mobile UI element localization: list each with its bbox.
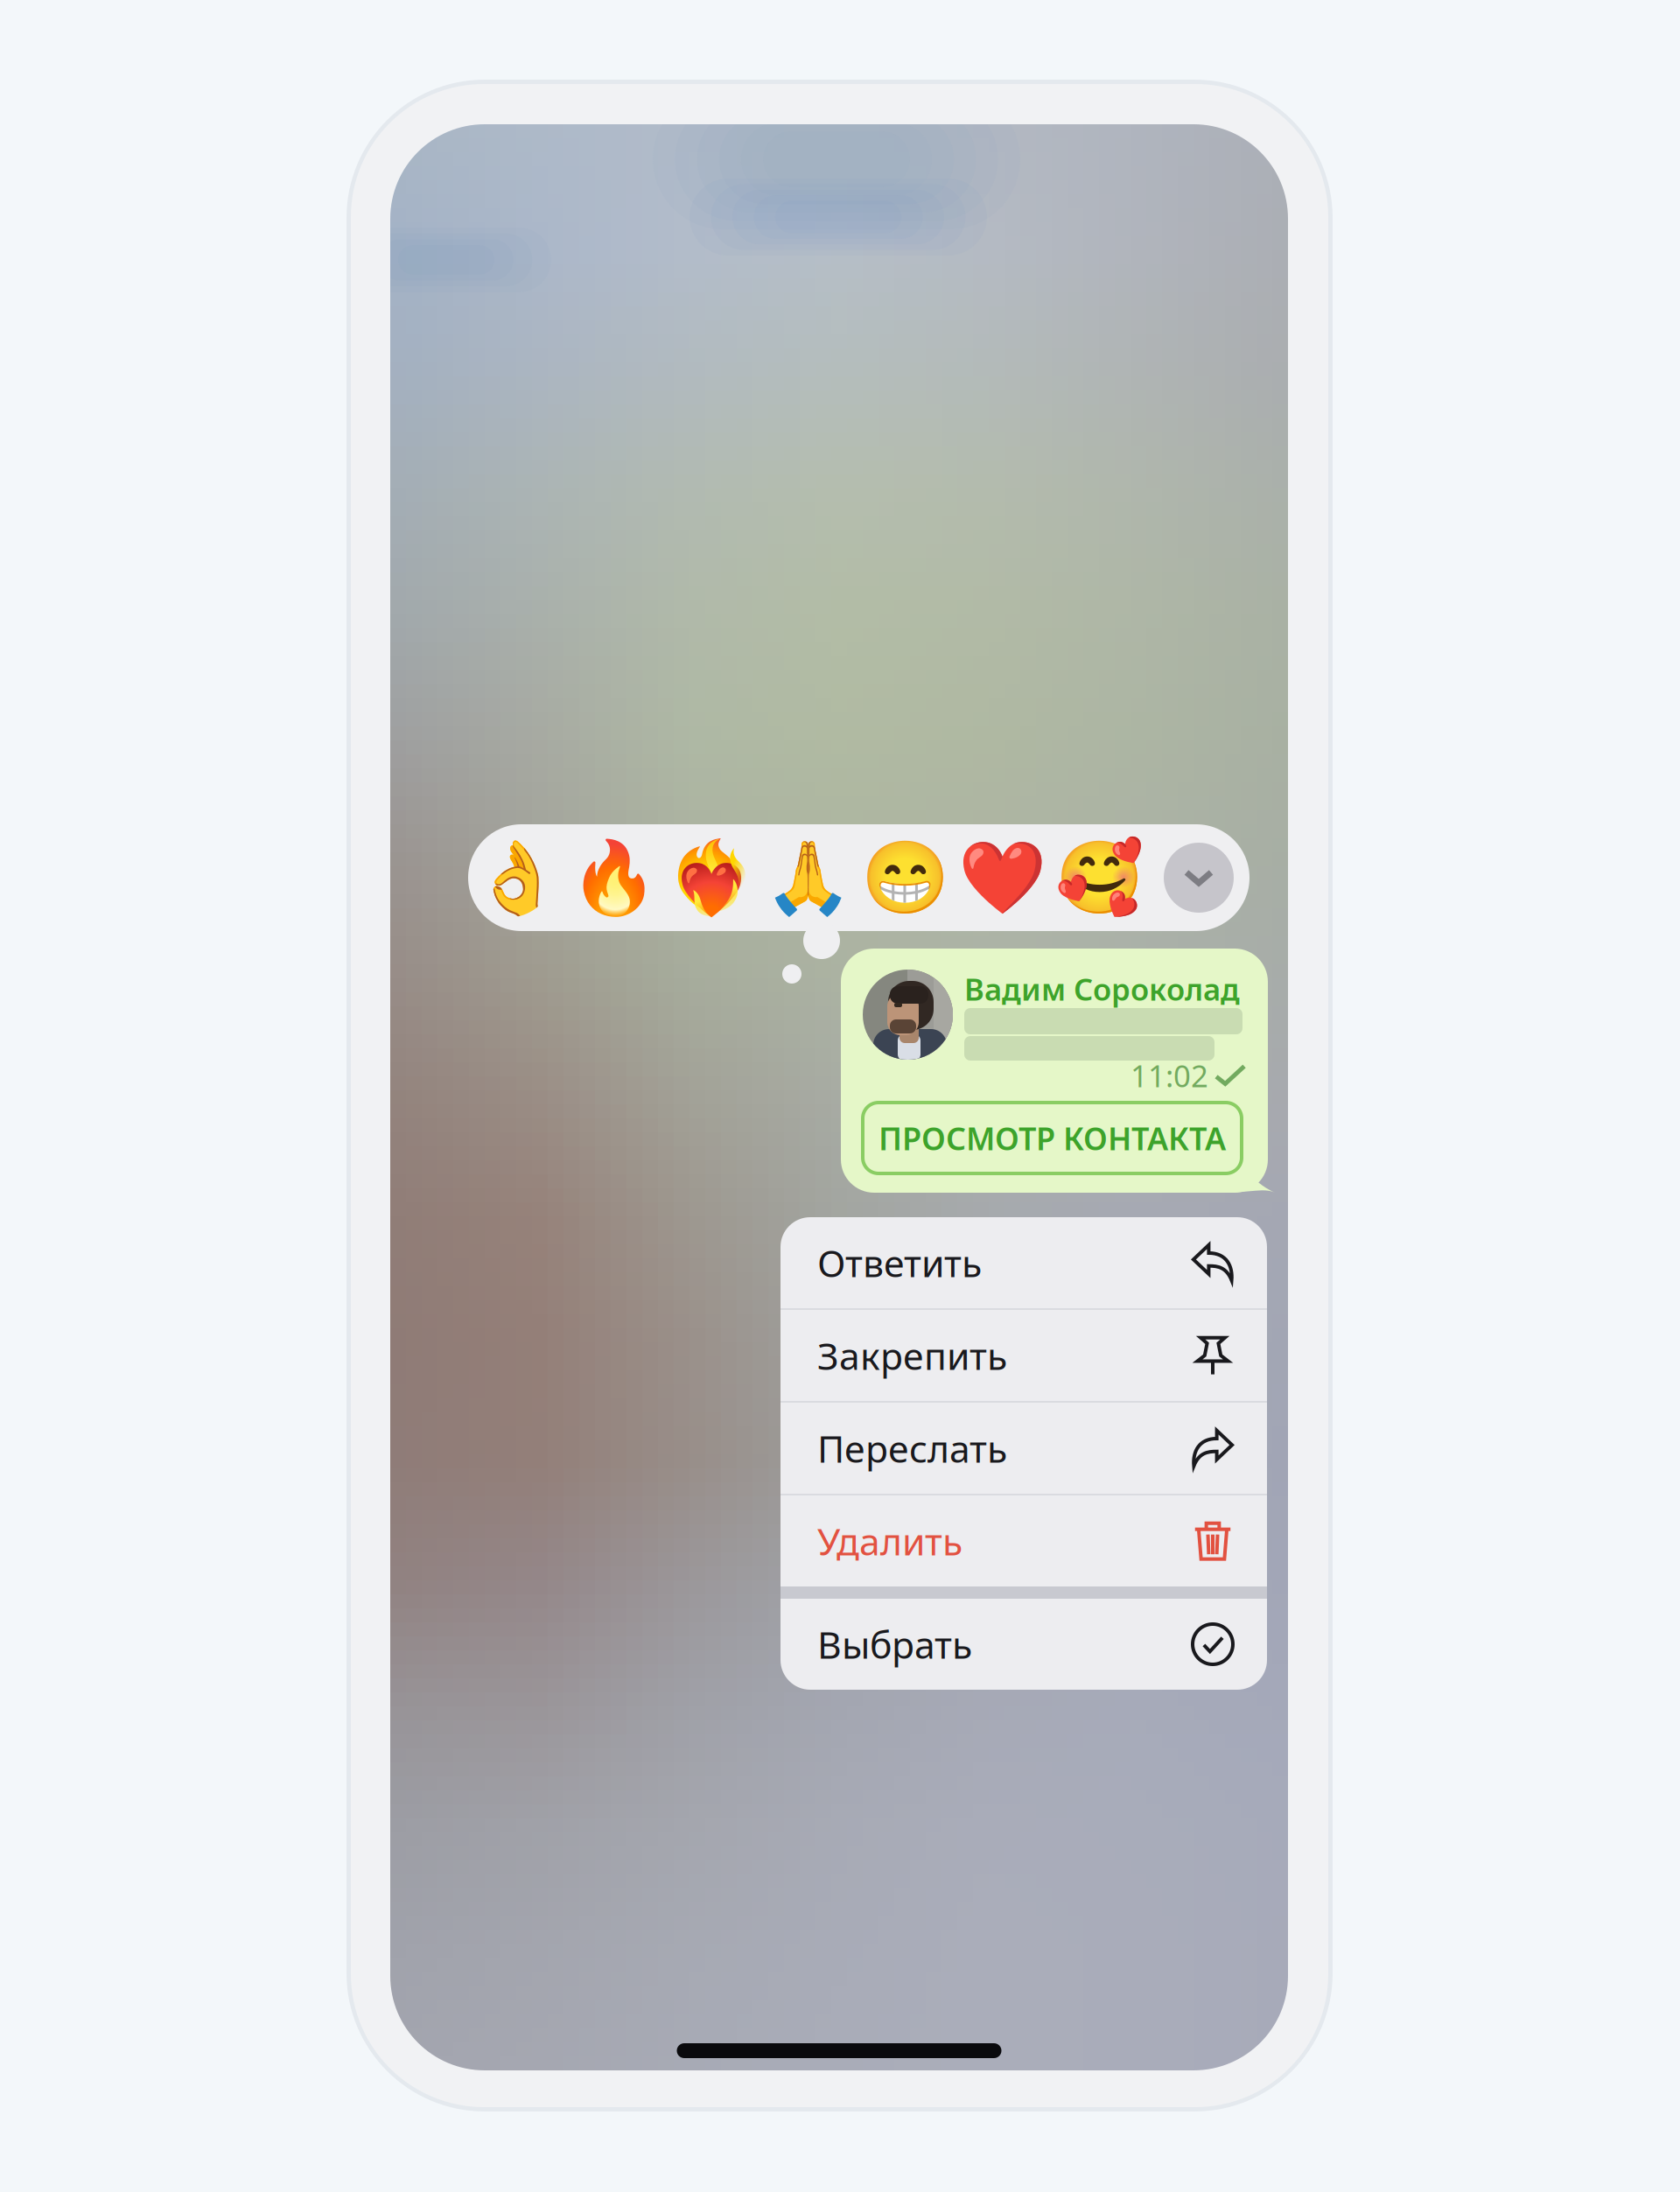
staticText: ❤️‍🔥 [667, 837, 755, 918]
button[interactable]: ❤️‍🔥 [662, 824, 759, 931]
button[interactable]: Переслать [780, 1403, 1267, 1494]
staticText: Вадим Сороколад [964, 969, 1240, 1009]
button[interactable]: 🥰 [1051, 824, 1148, 931]
staticText: 11:02 [1130, 1055, 1208, 1096]
staticText: ПРОСМОТР КОНТАКТА [878, 1117, 1226, 1159]
button[interactable]: More reactions [1148, 824, 1249, 931]
staticText: Выбрать [817, 1619, 972, 1669]
button[interactable]: ПРОСМОТР КОНТАКТА [863, 1103, 1242, 1173]
staticText: ❤️ [958, 837, 1046, 918]
button[interactable]: 🔥 [565, 824, 662, 931]
button[interactable]: Закрепить [780, 1310, 1267, 1401]
staticText: Переслать [817, 1423, 1007, 1473]
staticText: 😁 [861, 837, 949, 918]
staticText: 🙏 [764, 837, 852, 918]
staticText: 🥰 [1055, 837, 1144, 918]
staticText: 🔥 [570, 837, 658, 918]
button[interactable]: ❤️ [954, 824, 1051, 931]
button[interactable]: 🙏 [759, 824, 857, 931]
button[interactable]: Удалить [780, 1495, 1267, 1586]
button[interactable]: Ответить [780, 1217, 1267, 1308]
button[interactable]: 👌 [468, 824, 565, 931]
button[interactable]: Выбрать [780, 1599, 1267, 1690]
staticText: Ответить [817, 1238, 982, 1288]
staticText: Удалить [817, 1516, 962, 1566]
staticText: Закрепить [817, 1331, 1007, 1380]
button[interactable]: 😁 [857, 824, 954, 931]
staticText: 👌 [472, 837, 561, 918]
